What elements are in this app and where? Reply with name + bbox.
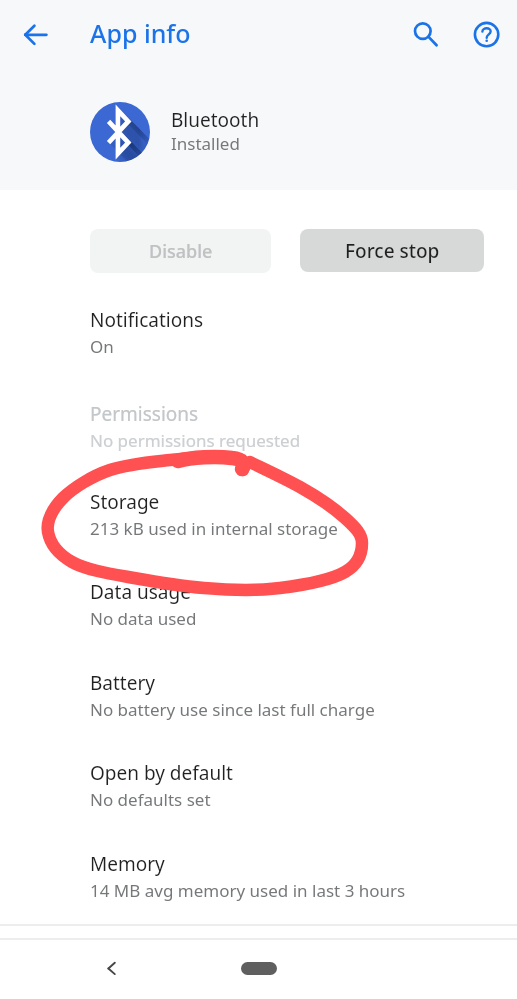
button[interactable]: Permissions [0, 387, 517, 466]
button[interactable]: Back [88, 946, 132, 990]
staticText: Bluetooth [171, 107, 260, 133]
button[interactable]: Search [399, 10, 447, 58]
staticText: App info [90, 16, 191, 50]
button[interactable]: Storage [0, 475, 517, 554]
button[interactable]: Force stop [300, 229, 484, 272]
staticText: 213 kB used in internal storage [90, 517, 338, 540]
button[interactable]: Home [241, 962, 277, 975]
staticText: No defaults set [90, 788, 211, 811]
staticText: 14 MB avg memory used in last 3 hours [90, 879, 406, 902]
staticText: Permissions [90, 401, 199, 427]
button[interactable]: Help [463, 11, 511, 59]
button[interactable]: Notifications [0, 293, 517, 372]
staticText: Data usage [90, 579, 191, 605]
staticText: No data used [90, 607, 197, 630]
button[interactable]: Battery [0, 656, 517, 735]
staticText: Force stop [345, 238, 440, 264]
button[interactable]: Open by default [0, 746, 517, 825]
button[interactable]: Disable [90, 229, 271, 273]
staticText: Open by default [90, 760, 233, 786]
button[interactable]: Memory [0, 837, 517, 916]
staticText: Memory [90, 851, 165, 877]
staticText: Disable [149, 239, 213, 264]
staticText: No battery use since last full charge [90, 698, 375, 721]
staticText: Installed [171, 132, 240, 155]
staticText: No permissions requested [90, 429, 301, 452]
staticText: Notifications [90, 307, 204, 333]
staticText: Storage [90, 489, 160, 515]
button[interactable]: Data usage [0, 565, 517, 644]
staticText: Battery [90, 670, 155, 696]
button[interactable]: Back [11, 11, 59, 59]
staticText: On [90, 335, 114, 358]
